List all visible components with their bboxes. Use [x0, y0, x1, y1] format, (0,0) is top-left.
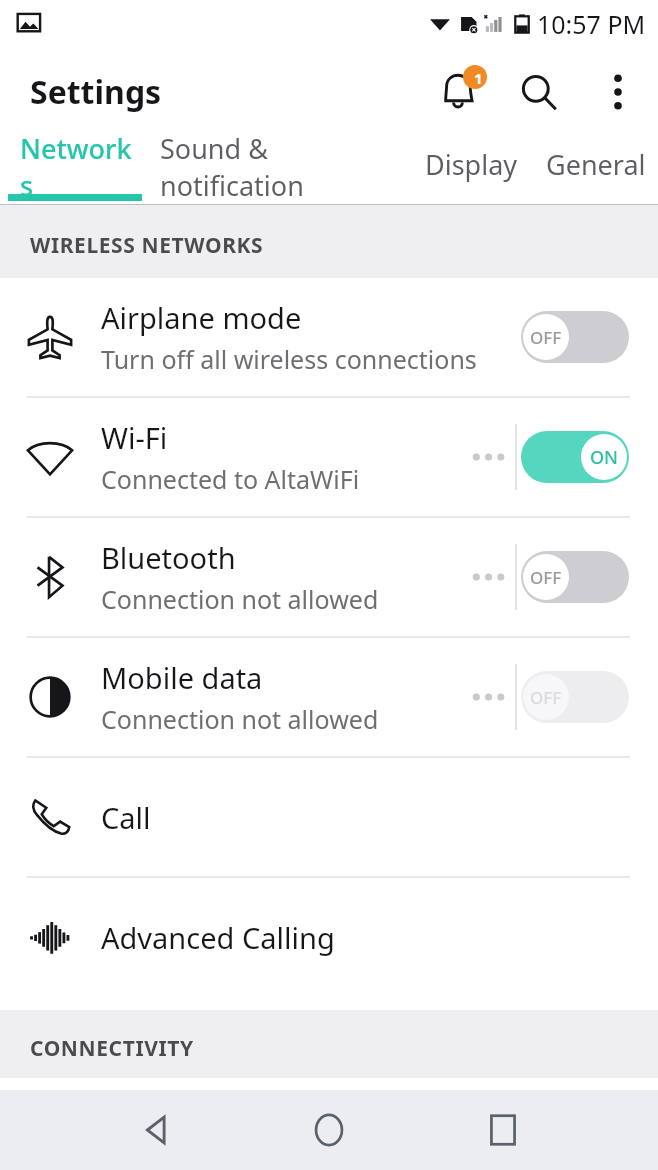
button[interactable]: Wi-Fi	[0, 398, 658, 516]
staticText: Sound & notification	[160, 130, 405, 198]
button[interactable]: Search	[508, 61, 570, 123]
button[interactable]: General	[546, 136, 658, 204]
button[interactable]: Notifications	[427, 61, 489, 123]
staticText: Wi-Fi	[101, 418, 168, 457]
staticText: OFF	[530, 326, 562, 349]
button[interactable]: Recent apps	[458, 1090, 548, 1170]
button[interactable]: Mobile data	[0, 638, 658, 756]
staticText: Mobile data	[101, 658, 263, 697]
staticText: WIRELESS NETWORKS	[30, 231, 264, 260]
button[interactable]: Toggle off	[520, 309, 630, 365]
button[interactable]: Sound & notification	[160, 136, 405, 204]
button[interactable]: Airplane mode	[0, 278, 658, 396]
staticText: Call	[101, 798, 151, 837]
staticText: Advanced Calling	[101, 918, 335, 957]
staticText: Connection not allowed	[101, 702, 379, 736]
staticText: 10:57 PM	[537, 7, 646, 41]
button[interactable]: Call	[0, 758, 658, 876]
staticText: Airplane mode	[101, 298, 302, 337]
button[interactable]: Toggle on	[520, 429, 630, 485]
button[interactable]: Home	[284, 1090, 374, 1170]
staticText: Display	[425, 146, 518, 183]
staticText: Turn off all wireless connections	[101, 342, 477, 376]
staticText: Settings	[30, 70, 162, 114]
button[interactable]: Back	[110, 1090, 200, 1170]
button[interactable]: Advanced Calling	[0, 878, 658, 996]
button[interactable]: Toggle off	[520, 669, 630, 725]
staticText: Networks	[20, 130, 142, 198]
staticText: CONNECTIVITY	[30, 1034, 194, 1063]
button[interactable]: Bluetooth	[0, 518, 658, 636]
button[interactable]: More options	[590, 64, 646, 120]
staticText: Connected to AltaWiFi	[101, 462, 360, 496]
staticText: 1	[474, 68, 483, 88]
staticText: OFF	[530, 566, 562, 589]
staticText: Connection not allowed	[101, 582, 379, 616]
staticText: Bluetooth	[101, 538, 236, 577]
staticText: OFF	[530, 686, 562, 709]
button[interactable]: Networks	[20, 136, 142, 204]
button[interactable]: Toggle off	[520, 549, 630, 605]
staticText: General	[546, 146, 646, 183]
staticText: ON	[590, 445, 619, 470]
button[interactable]: Display	[425, 136, 529, 204]
